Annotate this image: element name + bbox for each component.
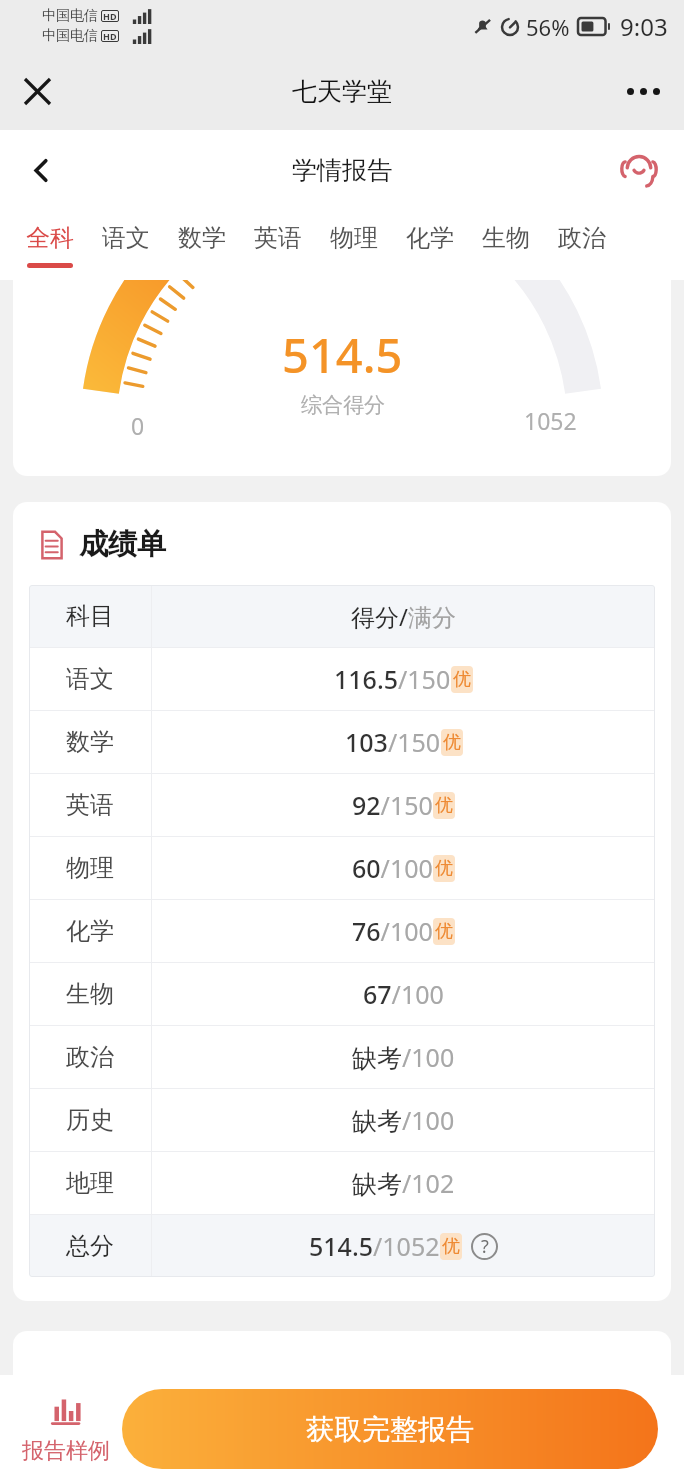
staticText: 化学: [66, 916, 114, 946]
staticText: 七天学堂: [292, 76, 392, 107]
staticText: 优: [435, 920, 453, 943]
staticText: 92/150: [352, 788, 433, 822]
button[interactable]: 语文: [29, 648, 655, 710]
staticText: 英语: [254, 223, 302, 253]
button[interactable]: 历史: [29, 1089, 655, 1151]
staticText: 56%: [526, 12, 570, 42]
staticText: 历史: [66, 1105, 114, 1135]
staticText: 中国电信: [42, 27, 98, 45]
staticText: 总分: [66, 1231, 114, 1261]
button[interactable]: 地理: [29, 1152, 655, 1214]
staticText: 103/150: [345, 725, 441, 759]
staticText: 得分/满分: [351, 600, 456, 633]
button[interactable]: 生物: [29, 963, 655, 1025]
staticText: HD: [103, 10, 117, 22]
button[interactable]: 政治: [29, 1026, 655, 1088]
button[interactable]: 全科: [12, 210, 88, 280]
button[interactable]: 英语: [240, 210, 316, 280]
staticText: 英语: [66, 790, 114, 820]
staticText: 76/100: [352, 914, 433, 948]
staticText: 优: [442, 1235, 460, 1258]
staticText: 优: [443, 731, 461, 754]
staticText: 9:03: [620, 10, 668, 43]
staticText: 物理: [66, 853, 114, 883]
staticText: ?: [481, 1234, 489, 1259]
button[interactable]: 生物: [468, 210, 544, 280]
staticText: 学情报告: [292, 155, 392, 186]
staticText: 物理: [330, 223, 378, 253]
staticText: 语文: [102, 223, 150, 253]
staticText: 科目: [66, 601, 114, 631]
staticText: 中国电信: [42, 7, 98, 25]
staticText: 514.5: [282, 323, 403, 387]
staticText: 514.5/1052: [309, 1229, 440, 1263]
button[interactable]: 数学: [29, 711, 655, 773]
staticText: 获取完整报告: [306, 1412, 474, 1447]
staticText: 60/100: [352, 851, 433, 885]
staticText: 数学: [178, 223, 226, 253]
staticText: 67/100: [363, 977, 444, 1011]
staticText: 缺考/100: [352, 1103, 455, 1137]
staticText: 缺考/102: [352, 1166, 455, 1200]
staticText: 数学: [66, 727, 114, 757]
button[interactable]: Back: [12, 141, 70, 199]
button[interactable]: 化学: [392, 210, 468, 280]
staticText: 0: [131, 410, 145, 441]
staticText: 开通会员，查看更全面的分析○○○: [123, 1373, 561, 1408]
button[interactable]: Close: [8, 62, 66, 120]
staticText: 生物: [66, 979, 114, 1009]
staticText: 全科: [26, 223, 74, 253]
staticText: 政治: [66, 1042, 114, 1072]
button[interactable]: 物理: [29, 837, 655, 899]
staticText: 政治: [558, 223, 606, 253]
button[interactable]: 政治: [544, 210, 620, 280]
button[interactable]: 英语: [29, 774, 655, 836]
staticText: 报告样例: [22, 1437, 110, 1465]
button[interactable]: 科目: [29, 585, 655, 647]
button[interactable]: 获取完整报告: [122, 1389, 658, 1469]
button[interactable]: 总分: [29, 1215, 655, 1277]
button[interactable]: Help: [471, 1233, 498, 1260]
staticText: 成绩单: [79, 526, 166, 563]
staticText: 缺考/100: [352, 1040, 455, 1074]
button[interactable]: More options: [614, 62, 672, 120]
staticText: 116.5/150: [334, 662, 451, 696]
button[interactable]: Customer service: [608, 139, 670, 201]
staticText: 优: [435, 857, 453, 880]
button[interactable]: 报告样例: [14, 1375, 118, 1482]
staticText: 综合得分: [301, 392, 385, 418]
staticText: HD: [103, 30, 117, 42]
button[interactable]: 物理: [316, 210, 392, 280]
button[interactable]: 数学: [164, 210, 240, 280]
staticText: 地理: [66, 1168, 114, 1198]
staticText: 优: [453, 668, 471, 691]
staticText: 优: [435, 794, 453, 817]
staticText: 化学: [406, 223, 454, 253]
button[interactable]: 化学: [29, 900, 655, 962]
button[interactable]: 语文: [88, 210, 164, 280]
staticText: 语文: [66, 664, 114, 694]
staticText: 1052: [524, 405, 577, 436]
staticText: 生物: [482, 223, 530, 253]
